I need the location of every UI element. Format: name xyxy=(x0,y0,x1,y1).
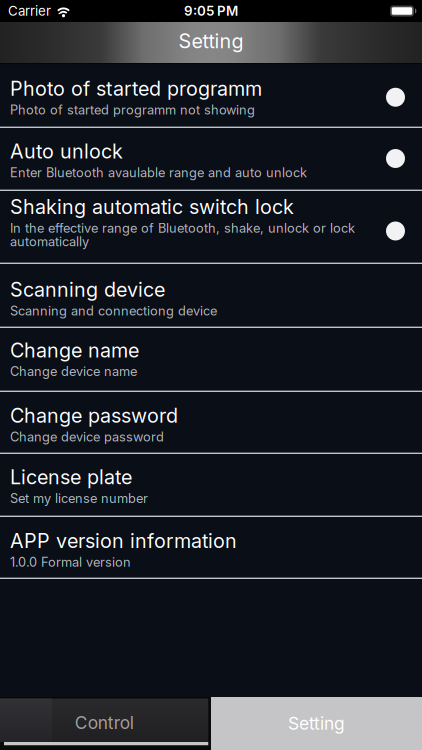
staticText: 1.0.0 Formal version xyxy=(10,554,131,570)
staticText: Shaking automatic switch lock xyxy=(10,195,294,219)
staticText: Photo of started programm not showing xyxy=(10,102,255,118)
staticText: Scanning device xyxy=(10,278,165,302)
button[interactable]: Shaking automatic switch lock xyxy=(0,191,422,262)
staticText: automatically xyxy=(10,234,89,249)
button[interactable]: Scanning device xyxy=(0,264,422,326)
staticText: Auto unlock xyxy=(10,139,123,163)
staticText: APP version information xyxy=(10,529,237,553)
button[interactable]: Change password xyxy=(0,392,422,452)
button[interactable]: APP version information xyxy=(0,517,422,577)
staticText: Change device password xyxy=(10,429,164,444)
staticText: Scanning and connectiong device xyxy=(10,303,217,319)
staticText: Change name xyxy=(10,338,139,362)
button[interactable]: Auto unlock xyxy=(0,128,422,189)
staticText: Control xyxy=(75,712,134,733)
button[interactable]: License plate xyxy=(0,454,422,515)
staticText: Carrier xyxy=(8,3,51,19)
staticText: Set my license number xyxy=(10,491,148,506)
staticText: 9:05 PM xyxy=(184,3,238,19)
staticText: Photo of started programm xyxy=(10,77,262,101)
button[interactable]: Setting xyxy=(211,697,422,750)
staticText: License plate xyxy=(10,465,132,489)
button[interactable]: Control xyxy=(0,697,208,750)
button[interactable]: Change name xyxy=(0,328,422,390)
staticText: In the effective range of Bluetooth, sha… xyxy=(10,220,355,236)
staticText: Setting xyxy=(288,713,345,734)
staticText: Setting xyxy=(178,29,243,53)
staticText: Enter Bluetooth avaulable range and auto… xyxy=(10,165,307,180)
staticText: Change password xyxy=(10,404,178,427)
staticText: Change device name xyxy=(10,364,137,379)
button[interactable]: Photo of started programm xyxy=(0,64,422,126)
